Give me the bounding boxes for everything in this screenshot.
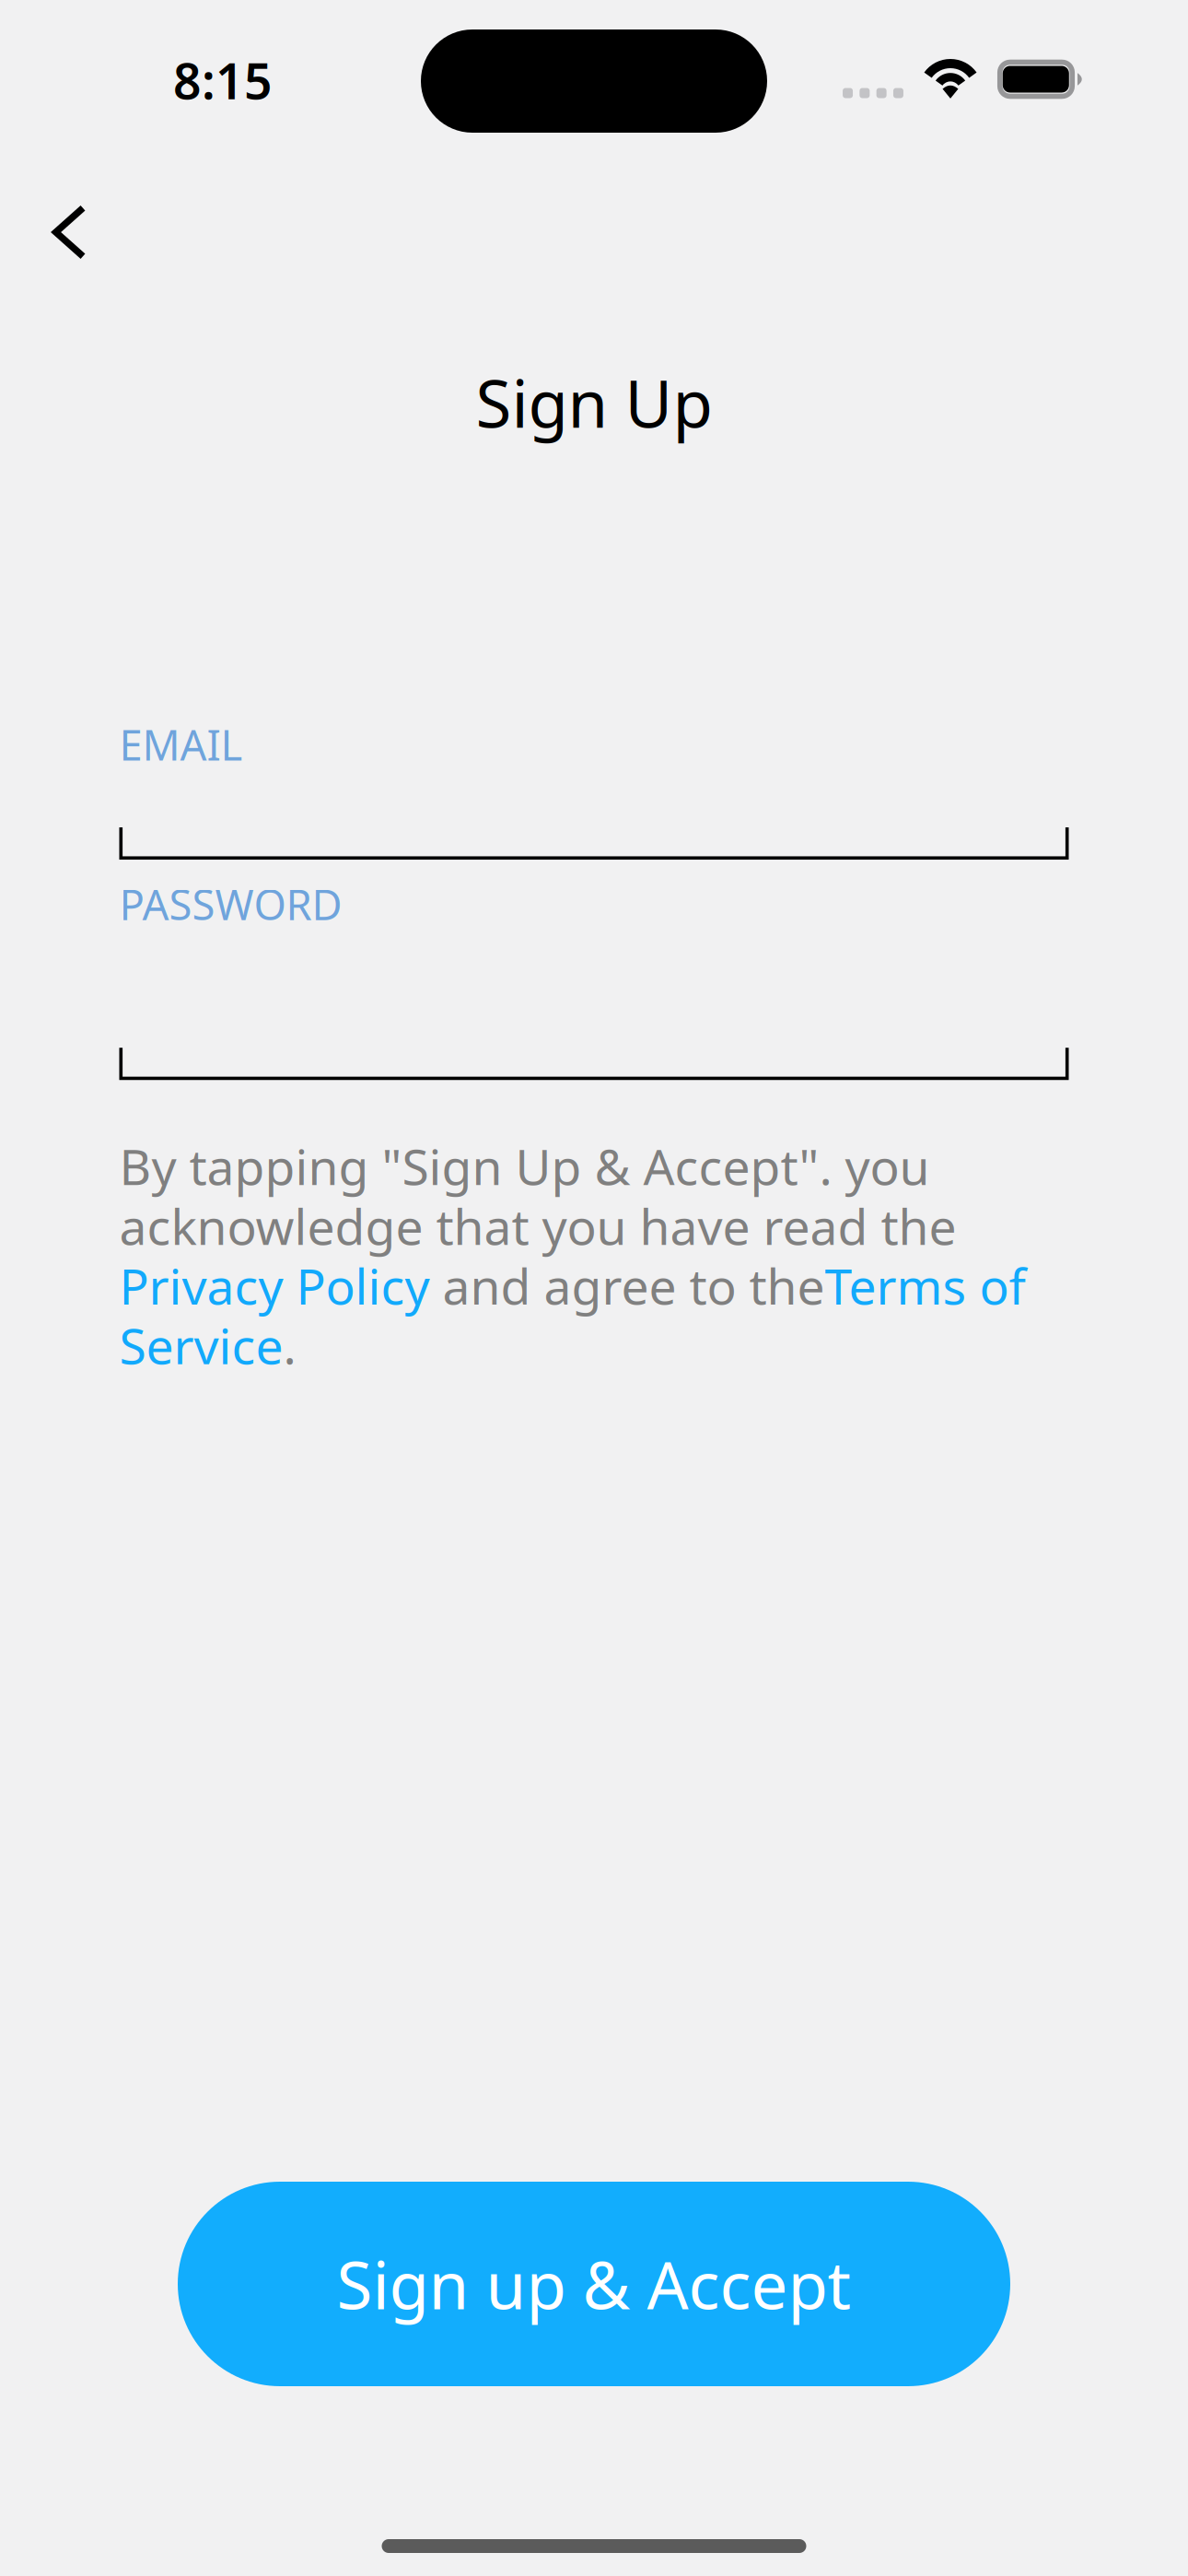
staticText: PASSWORD — [119, 876, 342, 932]
button[interactable]: Privacy Policy — [125, 1267, 431, 1320]
staticText: 8:15 — [173, 48, 273, 113]
button[interactable]: Sign up & Accept — [178, 2182, 1010, 2386]
staticText: EMAIL — [119, 717, 243, 772]
button[interactable]: Terms of Service — [825, 1267, 1029, 1320]
staticText: Sign up & Accept — [337, 2241, 851, 2327]
staticText: Sign Up — [476, 359, 712, 446]
staticText: By tapping "Sign Up & Accept". you ackno… — [119, 1133, 1025, 1378]
textField[interactable] — [119, 767, 1069, 832]
button[interactable]: Back — [0, 162, 121, 283]
